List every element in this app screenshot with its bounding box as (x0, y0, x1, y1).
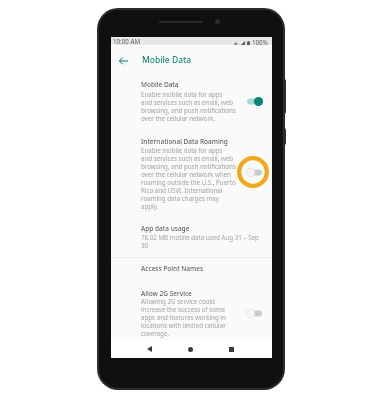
staticText: Enable mobile data for apps (141, 146, 223, 154)
button[interactable] (111, 221, 272, 252)
button[interactable] (111, 283, 272, 335)
staticText: browsing, and push notifications (141, 162, 236, 170)
button[interactable]: Navigate up (115, 52, 132, 69)
button[interactable]: Home (182, 340, 199, 358)
staticText: locations with limited cellular (141, 321, 226, 329)
staticText: International Data Roaming (141, 137, 228, 146)
button[interactable]: International Data Roaming (243, 165, 265, 179)
staticText: coverage. (141, 329, 170, 337)
button[interactable] (111, 75, 272, 124)
button[interactable] (111, 259, 272, 280)
staticText: roaming outside the U.S., Puerto (141, 178, 236, 186)
staticText: roaming data charges may (141, 194, 219, 202)
button[interactable]: Recent apps (223, 340, 240, 358)
staticText: apply. (141, 202, 159, 210)
staticText: browsing, and push notifications (141, 106, 236, 114)
staticText: Access Point Names (141, 264, 204, 273)
staticText: 78.02 MB mobile data used Aug 31 – Sep (141, 233, 259, 241)
staticText: Allow 2G Service (141, 289, 192, 298)
staticText: apps and features working in (141, 313, 226, 321)
staticText: Enable mobile data for apps (141, 90, 223, 98)
button[interactable]: Allow 2G Service (243, 306, 265, 320)
staticText: App data usage (141, 224, 190, 233)
staticText: 30 (141, 241, 149, 249)
staticText: 10:00 AM (113, 37, 141, 45)
staticText: Mobile Data (142, 54, 192, 66)
staticText: Allowing 2G service could (141, 297, 215, 305)
staticText: and services such as email, web (141, 98, 234, 106)
staticText: Rico and USVI. International (141, 186, 223, 194)
button[interactable] (111, 133, 272, 215)
staticText: over the cellular network when (141, 170, 231, 178)
staticText: 100% (252, 38, 268, 46)
button[interactable]: Back (141, 340, 158, 358)
staticText: Mobile Data (141, 80, 179, 89)
staticText: increase the success of some (141, 305, 226, 313)
staticText: and services such as email, web (141, 154, 234, 162)
staticText: over the cellular network. (141, 114, 215, 122)
button[interactable]: Mobile Data (244, 94, 266, 108)
